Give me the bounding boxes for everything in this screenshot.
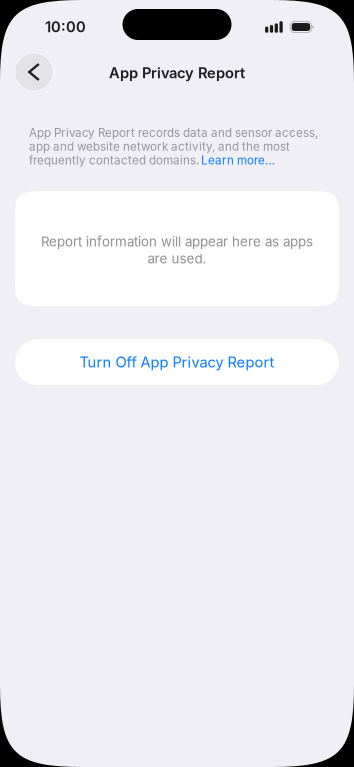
staticText: app and website network activity, and th…: [29, 139, 290, 153]
staticText: Turn Off App Privacy Report: [79, 353, 274, 371]
staticText: 10:00: [45, 18, 86, 36]
staticText: App Privacy Report records data and sens…: [29, 126, 318, 140]
staticText: are used.: [147, 251, 206, 267]
button[interactable]: Learn more…: [201, 153, 275, 167]
button[interactable]: Back: [15, 53, 53, 91]
staticText: Learn more…: [201, 153, 275, 167]
staticText: App Privacy Report: [109, 64, 245, 82]
button[interactable]: Turn Off App Privacy Report: [15, 339, 339, 385]
staticText: Report information will appear here as a…: [41, 233, 313, 250]
staticText: frequently contacted domains.: [29, 153, 199, 167]
